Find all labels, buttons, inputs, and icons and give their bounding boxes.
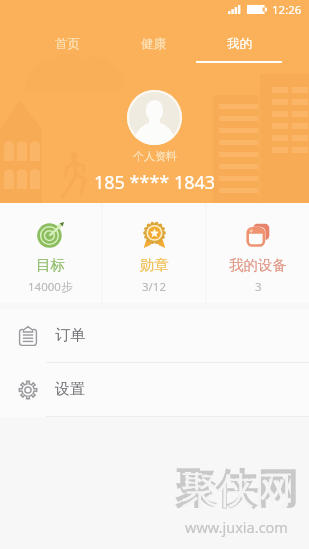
button[interactable]: 设置 [0,363,309,416]
staticText: www.juxia.com [185,517,288,537]
staticText: 3 [255,279,262,295]
button[interactable]: 我的设备 [207,203,309,303]
button[interactable]: 健康 [110,21,196,63]
staticText: 聚侠网 [175,464,298,516]
staticText: 设置 [55,380,85,399]
staticText: 个人资料 [133,149,177,163]
staticText: 我的设备 [229,256,287,274]
button[interactable]: 勋章 [103,203,205,303]
staticText: 14000步 [28,279,73,295]
staticText: 3/12 [142,279,167,295]
staticText: 目标 [36,256,65,274]
button[interactable]: Profile avatar [127,90,182,145]
staticText: 185 **** 1843 [94,170,216,195]
staticText: 12:26 [272,2,302,18]
staticText: 健康 [141,36,166,52]
button[interactable]: 我的 [196,21,282,63]
staticText: 勋章 [140,256,169,274]
button[interactable]: 目标 [0,203,101,303]
staticText: 首页 [55,36,80,52]
button[interactable]: 首页 [24,21,110,63]
staticText: 订单 [55,326,85,345]
staticText: 我的 [227,36,252,52]
button[interactable]: 订单 [0,309,309,362]
staticText: 聚侠网 [181,467,292,514]
